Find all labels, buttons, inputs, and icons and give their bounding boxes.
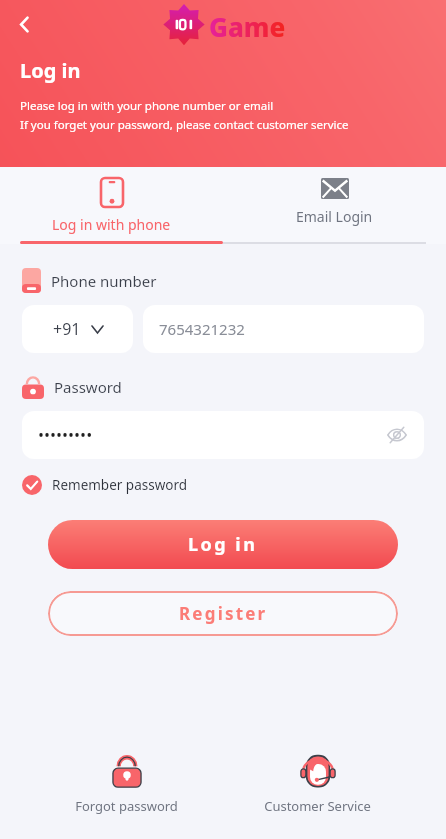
staticText: Log in — [20, 57, 81, 84]
button[interactable]: Log in with phone — [0, 167, 223, 234]
staticText: Log in — [188, 532, 258, 557]
staticText: Forgot password — [75, 797, 178, 815]
staticText: Password — [54, 377, 122, 397]
staticText: Please log in with your phone number or … — [20, 98, 274, 114]
staticText: Register — [179, 602, 268, 625]
staticText: Customer Service — [264, 797, 371, 815]
button[interactable]: Forgot password — [65, 749, 188, 819]
staticText: Game — [209, 9, 286, 44]
button[interactable]: Register — [48, 591, 398, 636]
button[interactable]: Customer Service — [254, 749, 381, 819]
staticText: Email Login — [296, 207, 373, 226]
button[interactable]: ••••••••• — [22, 411, 424, 459]
staticText: 7654321232 — [159, 319, 245, 339]
button[interactable]: +91 — [22, 305, 133, 353]
staticText: Log in with phone — [52, 215, 171, 234]
staticText: Phone number — [51, 271, 157, 291]
button[interactable]: Email Login — [223, 167, 446, 226]
staticText: Remember password — [52, 476, 188, 494]
button[interactable]: Back — [5, 5, 43, 43]
button[interactable]: Log in — [48, 520, 398, 569]
button[interactable]: Remember password — [22, 475, 188, 495]
button[interactable]: 7654321232 — [143, 305, 424, 353]
staticText: +91 — [53, 318, 81, 340]
button[interactable]: Show password — [384, 422, 410, 448]
staticText: ••••••••• — [38, 424, 93, 446]
staticText: If you forget your password, please cont… — [20, 117, 349, 133]
